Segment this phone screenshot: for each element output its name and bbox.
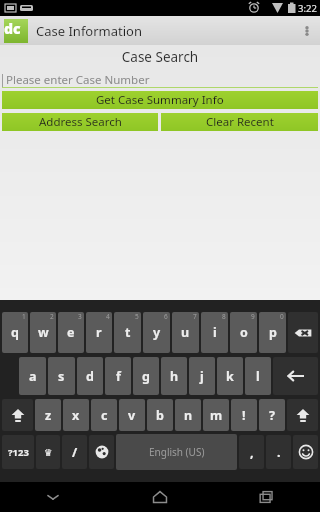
staticText: f bbox=[116, 368, 121, 385]
button[interactable]: f bbox=[105, 357, 131, 395]
button[interactable]: ! bbox=[231, 399, 257, 431]
button[interactable]: w bbox=[30, 312, 56, 353]
staticText: 9 bbox=[251, 312, 255, 321]
staticText: x bbox=[72, 407, 80, 424]
button[interactable]: b bbox=[147, 399, 173, 431]
button[interactable]: App logo bbox=[4, 19, 28, 43]
button[interactable]: Please enter Case Number bbox=[2, 71, 318, 88]
button[interactable]: g bbox=[133, 357, 159, 395]
staticText: n bbox=[184, 407, 193, 424]
staticText: ? bbox=[269, 407, 275, 424]
button[interactable]: c bbox=[91, 399, 117, 431]
staticText: z bbox=[45, 407, 52, 424]
staticText: l bbox=[256, 368, 260, 385]
staticText: c bbox=[101, 407, 108, 424]
staticText: English (US) bbox=[149, 445, 205, 459]
button[interactable]: d bbox=[77, 357, 103, 395]
staticText: d bbox=[86, 368, 94, 385]
button[interactable]: / bbox=[62, 435, 87, 469]
button[interactable]: Back bbox=[0, 482, 106, 512]
staticText: k bbox=[226, 368, 234, 385]
button[interactable]: n bbox=[175, 399, 201, 431]
staticText: 3 bbox=[78, 312, 82, 321]
button[interactable]: Address Search bbox=[2, 113, 158, 131]
button[interactable]: Clear Recent bbox=[161, 113, 318, 131]
button[interactable]: v bbox=[119, 399, 145, 431]
staticText: 8 bbox=[222, 312, 226, 321]
button[interactable]: m bbox=[203, 399, 229, 431]
staticText: ! bbox=[242, 407, 246, 424]
staticText: Case Search bbox=[2, 48, 318, 66]
staticText: ?123 bbox=[8, 446, 29, 459]
staticText: Get Case Summary Info bbox=[96, 92, 224, 108]
staticText: q bbox=[11, 324, 19, 341]
button[interactable]: z bbox=[35, 399, 61, 431]
button[interactable]: p bbox=[259, 312, 286, 353]
button[interactable]: . bbox=[266, 435, 291, 469]
staticText: 1 bbox=[22, 312, 26, 321]
staticText: t bbox=[125, 324, 131, 341]
staticText: o bbox=[240, 324, 248, 341]
button[interactable]: Shift bbox=[287, 399, 318, 431]
button[interactable]: English (US) bbox=[116, 434, 237, 470]
staticText: s bbox=[58, 368, 65, 385]
button[interactable]: x bbox=[63, 399, 89, 431]
button[interactable]: i bbox=[201, 312, 228, 353]
button[interactable]: u bbox=[172, 312, 199, 353]
button[interactable]: ♛ bbox=[36, 435, 60, 469]
staticText: u bbox=[181, 324, 190, 341]
button[interactable]: Shift bbox=[2, 399, 33, 431]
staticText: m bbox=[210, 407, 223, 424]
staticText: b bbox=[156, 407, 164, 424]
button[interactable]: , bbox=[239, 435, 264, 469]
staticText: . bbox=[277, 444, 281, 461]
button[interactable]: h bbox=[161, 357, 187, 395]
button[interactable]: o bbox=[230, 312, 257, 353]
staticText: i bbox=[213, 324, 217, 341]
staticText: / bbox=[72, 444, 78, 461]
button[interactable]: y bbox=[143, 312, 170, 353]
staticText: 7 bbox=[193, 312, 197, 321]
staticText: 6 bbox=[164, 312, 168, 321]
staticText: 5 bbox=[135, 312, 139, 321]
button[interactable]: q bbox=[2, 312, 28, 353]
staticText: r bbox=[96, 324, 102, 341]
button[interactable]: ?123 bbox=[2, 435, 34, 469]
staticText: , bbox=[250, 444, 254, 461]
button[interactable]: l bbox=[245, 357, 271, 395]
staticText: ♛ bbox=[44, 447, 53, 458]
staticText: Please enter Case Number bbox=[6, 72, 150, 88]
button[interactable]: s bbox=[48, 357, 75, 395]
button[interactable]: Change language bbox=[89, 435, 114, 469]
staticText: 2 bbox=[50, 312, 54, 321]
button[interactable]: Home bbox=[106, 482, 213, 512]
staticText: 4 bbox=[106, 312, 110, 321]
staticText: 0 bbox=[280, 312, 284, 321]
button[interactable]: r bbox=[86, 312, 112, 353]
button[interactable]: e bbox=[58, 312, 84, 353]
button[interactable]: Get Case Summary Info bbox=[2, 91, 318, 109]
staticText: Address Search bbox=[39, 114, 122, 130]
staticText: v bbox=[128, 407, 136, 424]
staticText: a bbox=[29, 368, 37, 385]
button[interactable]: Enter bbox=[273, 357, 318, 395]
button[interactable]: k bbox=[217, 357, 243, 395]
staticText: dcp bbox=[4, 19, 28, 43]
staticText: w bbox=[38, 324, 49, 341]
staticText: Case Information bbox=[36, 22, 142, 40]
staticText: e bbox=[67, 324, 75, 341]
staticText: p bbox=[269, 324, 277, 341]
staticText: g bbox=[142, 368, 150, 385]
staticText: j bbox=[200, 368, 204, 385]
staticText: h bbox=[170, 368, 179, 385]
button[interactable]: t bbox=[114, 312, 141, 353]
button[interactable]: Recent apps bbox=[213, 482, 320, 512]
button[interactable]: a bbox=[19, 357, 46, 395]
button[interactable]: Backspace bbox=[288, 312, 318, 353]
staticText: 3:22 bbox=[298, 2, 317, 15]
button[interactable]: More options bbox=[294, 16, 320, 45]
staticText: Clear Recent bbox=[206, 114, 274, 130]
button[interactable]: j bbox=[189, 357, 215, 395]
button[interactable]: Emoji bbox=[293, 435, 318, 469]
button[interactable]: ? bbox=[259, 399, 285, 431]
